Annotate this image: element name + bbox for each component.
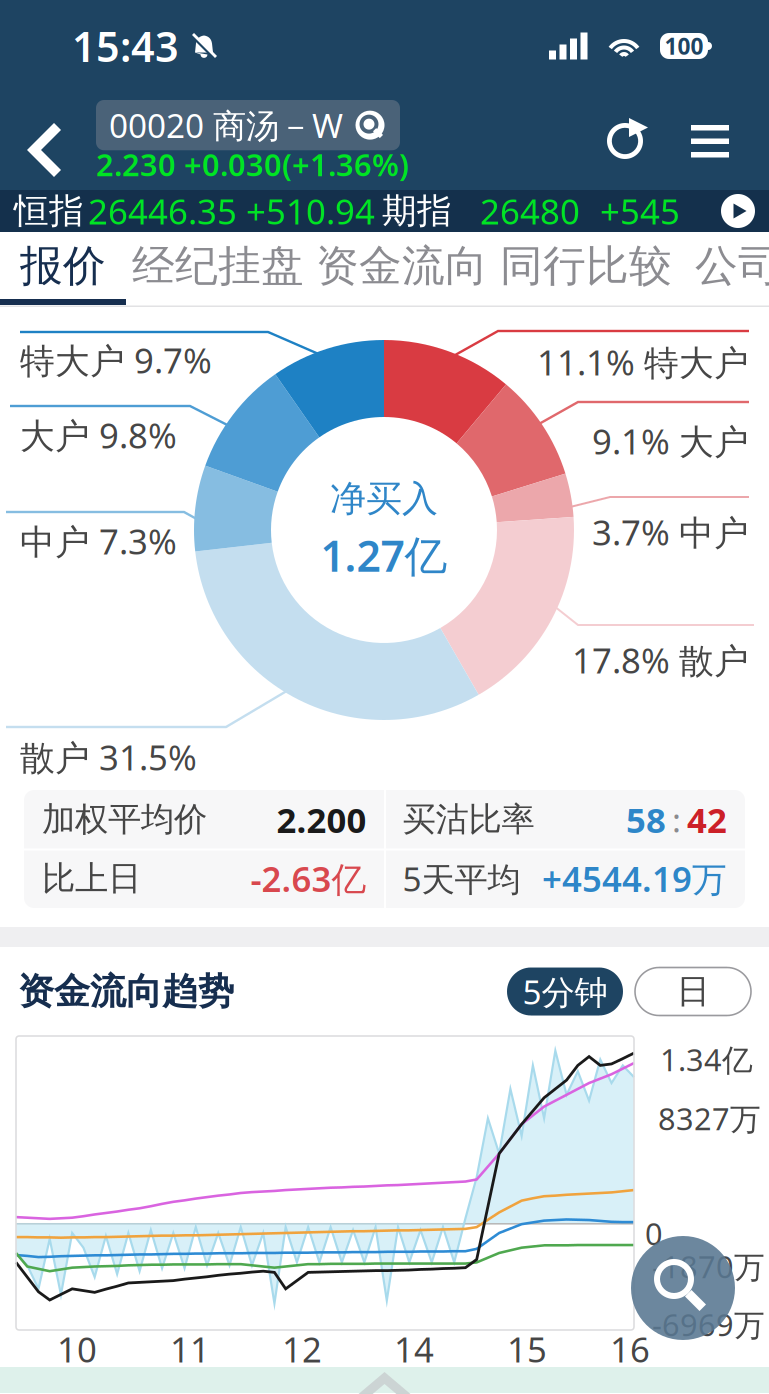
button[interactable]: 同行比较 — [494, 232, 678, 300]
staticText: 比上日 — [42, 858, 141, 899]
staticText: 15:43 — [72, 19, 179, 73]
staticText: 100 — [664, 31, 703, 61]
staticText: 10 — [57, 1326, 97, 1372]
staticText: 14 — [394, 1326, 434, 1372]
staticText: 11 — [170, 1326, 210, 1372]
staticText: +4544.19万 — [542, 855, 727, 901]
staticText: 16 — [610, 1326, 650, 1372]
button[interactable]: 经纪挂盘 — [126, 232, 310, 300]
staticText: 买沽比率 — [402, 799, 534, 840]
button[interactable]: Menu — [679, 107, 741, 175]
staticText: 资金流向趋势 — [18, 969, 234, 1014]
staticText: 8327万 — [658, 1098, 761, 1139]
staticText: 资金流向 — [316, 240, 488, 292]
staticText: 2.200 — [276, 796, 366, 842]
staticText: 期指 — [382, 190, 452, 232]
staticText: 散户 31.5% — [20, 734, 197, 780]
staticText: +545 — [600, 188, 680, 234]
staticText: 净买入 — [330, 477, 438, 521]
staticText: 3.7% 中户 — [592, 509, 749, 555]
staticText: 26480 — [480, 188, 580, 234]
staticText: 中户 7.3% — [20, 518, 177, 564]
staticText: 15 — [507, 1326, 547, 1372]
staticText: 恒指 — [14, 190, 84, 232]
staticText: -1870万 — [652, 1246, 765, 1287]
staticText: 00020 商汤－W — [109, 103, 343, 147]
button[interactable]: 公司 — [678, 232, 769, 300]
staticText: 5天平均 — [402, 856, 520, 901]
staticText: 报价 — [20, 240, 106, 292]
button[interactable]: Refresh — [593, 107, 661, 175]
button[interactable]: Search — [631, 1236, 735, 1340]
staticText: -6969万 — [652, 1304, 765, 1345]
staticText: 公司 — [695, 240, 769, 292]
staticText: 26446.35 — [88, 188, 237, 234]
button[interactable]: 日 — [635, 967, 751, 1015]
button[interactable]: 00020 商汤－W — [96, 100, 400, 150]
staticText: +510.94 — [246, 188, 375, 234]
staticText: 2.230 +0.030(+1.36%) — [96, 144, 409, 185]
staticText: : — [672, 797, 681, 842]
staticText: 加权平均价 — [42, 799, 207, 840]
staticText: 9.1% 大户 — [592, 418, 749, 464]
button[interactable]: Back — [14, 108, 74, 192]
staticText: 0 — [645, 1213, 663, 1254]
staticText: 大户 9.8% — [20, 412, 177, 458]
staticText: 特大户 9.7% — [20, 337, 212, 383]
button[interactable]: Play — [721, 194, 755, 228]
button[interactable]: 报价 — [0, 232, 126, 300]
button[interactable]: 资金流向 — [310, 232, 494, 300]
staticText: -2.63亿 — [250, 855, 366, 901]
staticText: 同行比较 — [500, 240, 672, 292]
staticText: 经纪挂盘 — [132, 240, 304, 292]
staticText: 1.34亿 — [660, 1039, 753, 1080]
staticText: 1.27亿 — [320, 527, 447, 583]
staticText: 5分钟 — [522, 969, 607, 1014]
staticText: 11.1% 特大户 — [537, 339, 749, 385]
staticText: 58 — [626, 796, 666, 842]
staticText: 17.8% 散户 — [572, 637, 749, 683]
staticText: 42 — [687, 796, 727, 842]
button[interactable]: 5分钟 — [507, 967, 623, 1015]
staticText: 日 — [676, 971, 709, 1012]
staticText: 12 — [282, 1326, 322, 1372]
